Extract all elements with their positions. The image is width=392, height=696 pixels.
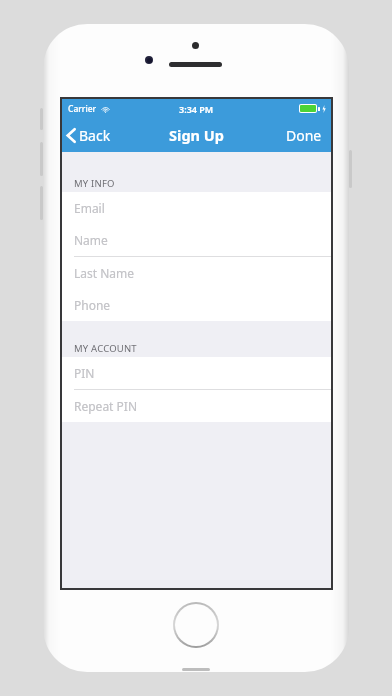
button[interactable]: Home (173, 602, 219, 648)
button[interactable]: Back (62, 122, 121, 149)
staticText: Sign Up (169, 125, 224, 145)
staticText: Repeat PIN (74, 398, 138, 414)
staticText: Name (74, 232, 108, 248)
staticText: Carrier (68, 103, 97, 115)
staticText: PIN (74, 365, 95, 381)
button[interactable]: Name (62, 224, 331, 256)
staticText: MY INFO (74, 177, 115, 190)
staticText: Back (79, 126, 111, 145)
button[interactable]: Repeat PIN (62, 390, 331, 422)
staticText: MY ACCOUNT (74, 342, 137, 355)
button[interactable]: Email (62, 192, 331, 224)
staticText: Done (286, 126, 322, 145)
button[interactable]: Done (277, 121, 331, 150)
staticText: Email (74, 200, 105, 216)
staticText: Last Name (74, 265, 135, 281)
staticText: 3:34 PM (179, 103, 214, 115)
staticText: Phone (74, 297, 111, 313)
button[interactable]: Last Name (62, 257, 331, 289)
button[interactable]: Phone (62, 289, 331, 321)
button[interactable]: PIN (62, 357, 331, 389)
